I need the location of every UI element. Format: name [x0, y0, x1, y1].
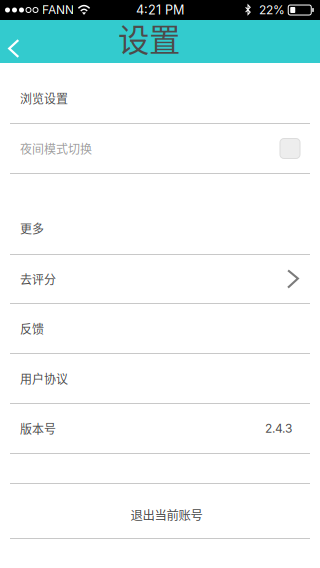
- button[interactable]: Back: [0, 20, 34, 63]
- button[interactable]: 夜间模式切换: [0, 124, 320, 173]
- staticText: 夜间模式切换: [20, 140, 92, 157]
- staticText: 反馈: [20, 320, 44, 337]
- button[interactable]: 反馈: [0, 304, 320, 353]
- staticText: 退出当前账号: [130, 505, 202, 523]
- staticText: 2.4.3: [265, 421, 292, 436]
- staticText: 22%: [259, 3, 285, 17]
- staticText: 4:21 PM: [136, 2, 184, 18]
- staticText: 去评分: [20, 270, 56, 288]
- button[interactable]: 版本号: [0, 404, 320, 453]
- button[interactable]: 退出当前账号: [0, 484, 320, 538]
- staticText: 浏览设置: [20, 90, 68, 107]
- staticText: 更多: [20, 220, 44, 237]
- staticText: 版本号: [20, 420, 56, 437]
- staticText: 设置: [118, 15, 180, 61]
- staticText: FANN: [42, 3, 74, 17]
- button[interactable]: 去评分: [0, 255, 320, 303]
- button[interactable]: 用户协议: [0, 354, 320, 403]
- staticText: 用户协议: [20, 370, 68, 387]
